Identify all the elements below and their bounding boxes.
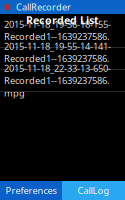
button[interactable]: CallLog xyxy=(62,181,125,200)
staticText: CallRecorder xyxy=(16,1,71,13)
button[interactable]: 2015-11-18_19-55-14-141- xyxy=(0,48,125,69)
staticText: 2015-11-18_19-36-18-155- xyxy=(4,18,111,30)
staticText: Recorded1--1639237586.mpg xyxy=(4,74,110,99)
staticText: CallLog xyxy=(77,184,109,197)
button[interactable]: 2015-11-18_22-33-13-650- xyxy=(0,70,125,91)
button[interactable]: 2015-11-18_19-36-18-155- xyxy=(0,26,125,47)
button[interactable]: Preferences xyxy=(0,181,62,200)
staticText: Recorded1--1639237586.mpg xyxy=(4,52,110,77)
staticText: Recorded1--1639237586.mpg xyxy=(4,30,110,55)
staticText: Recorded List xyxy=(26,13,99,27)
staticText: 2015-11-18_22-33-13-650- xyxy=(4,62,111,74)
staticText: 2015-11-18_19-55-14-141- xyxy=(4,40,111,52)
staticText: Preferences xyxy=(5,184,56,197)
